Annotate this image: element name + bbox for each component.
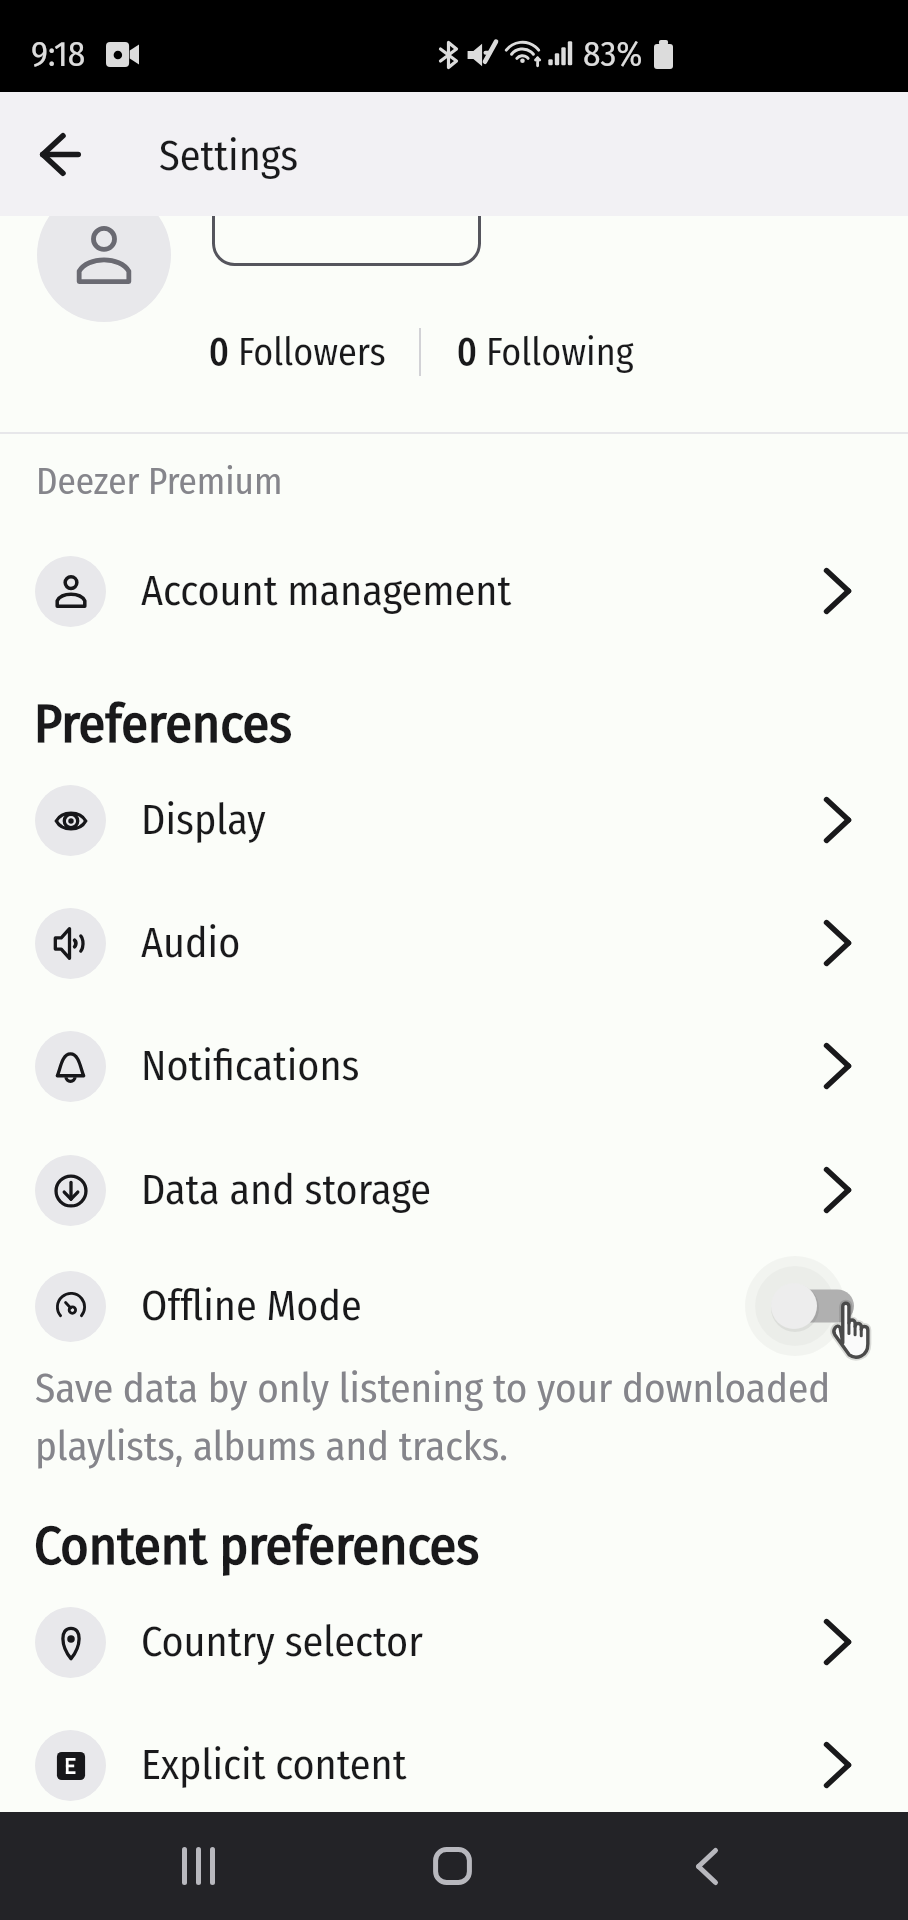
staticText: 0 (209, 329, 238, 375)
staticText: Save data by only listening to your down… (35, 1364, 831, 1471)
button[interactable]: Explicit content (0, 1703, 908, 1827)
staticText: Account management (141, 566, 824, 616)
button[interactable]: Offline mode (743, 1261, 873, 1351)
button[interactable]: Country selector (0, 1580, 908, 1704)
button[interactable]: Notifications (0, 1004, 908, 1128)
staticText: Offline Mode (141, 1281, 778, 1331)
staticText: 83% (583, 33, 643, 75)
staticText: 9:18 (31, 33, 86, 75)
staticText: Audio (141, 918, 824, 968)
button[interactable]: Recent apps (143, 1812, 253, 1920)
button[interactable]: 0 (457, 329, 634, 375)
button[interactable]: Offline Mode (0, 1244, 908, 1368)
staticText: Deezer Premium (36, 459, 283, 503)
staticText: Notifications (141, 1041, 824, 1091)
staticText: Data and storage (141, 1165, 824, 1215)
staticText: 0 (457, 329, 486, 375)
staticText: Following (486, 329, 634, 375)
staticText: Content preferences (34, 1514, 480, 1579)
staticText: Preferences (34, 692, 293, 757)
button[interactable]: Display (0, 758, 908, 882)
button[interactable]: Account management (0, 529, 908, 653)
button[interactable]: Home (397, 1812, 507, 1920)
staticText: Country selector (141, 1617, 824, 1667)
button[interactable]: Edit profile (212, 150, 481, 266)
staticText: Display (141, 795, 824, 845)
staticText: Explicit content (141, 1740, 824, 1790)
button[interactable]: Navigate back (19, 113, 101, 195)
button[interactable]: 0 (209, 329, 386, 375)
button[interactable]: Back (652, 1812, 762, 1920)
staticText: Followers (238, 329, 386, 375)
staticText: Settings (159, 131, 299, 181)
button[interactable]: Profile picture (37, 188, 171, 322)
button[interactable]: Data and storage (0, 1128, 908, 1252)
button[interactable]: Audio (0, 881, 908, 1005)
